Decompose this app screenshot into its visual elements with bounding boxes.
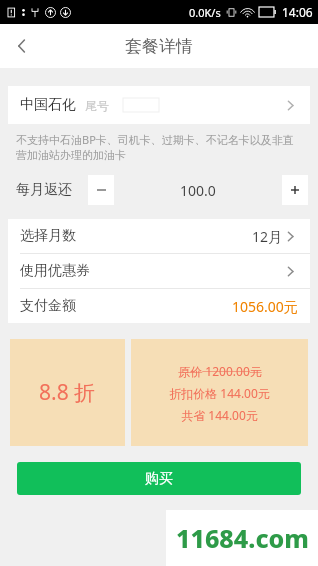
staticText: 中国石化 [20,96,76,114]
button[interactable]: 选择月数 [8,219,310,253]
button[interactable]: 中国石化 [8,86,310,124]
staticText: 尾号 [85,98,109,113]
staticText: 使用优惠券 [20,262,90,280]
staticText: 选择月数 [20,227,76,245]
staticText: 原价 1200.00元 [178,363,262,379]
button[interactable]: Decrease [88,175,114,205]
staticText: 12月 [252,227,283,246]
staticText: 11684.com [176,521,309,555]
staticText: 0.0K/s [189,5,221,20]
staticText: 不支持中石油BP卡、司机卡、过期卡、不记名卡以及非直营加油站办理的加油卡 [16,132,302,162]
button[interactable]: 使用优惠券 [8,254,310,288]
staticText: 购买 [145,470,173,488]
staticText: 折扣价格 144.00元 [169,385,270,401]
button[interactable]: Back [0,24,44,68]
staticText: 支付金额 [20,297,76,315]
button[interactable]: Increase [282,175,308,205]
staticText: 14:06 [282,4,313,20]
staticText: 每月返还 [16,181,72,199]
staticText: 套餐详情 [125,36,193,57]
button[interactable]: 购买 [17,462,301,495]
button[interactable]: 支付金额 [8,289,310,323]
staticText: 1056.00元 [232,297,298,316]
staticText: 100.0 [180,181,216,200]
staticText: 8.8 折 [39,378,96,407]
staticText: 共省 144.00元 [181,407,258,423]
